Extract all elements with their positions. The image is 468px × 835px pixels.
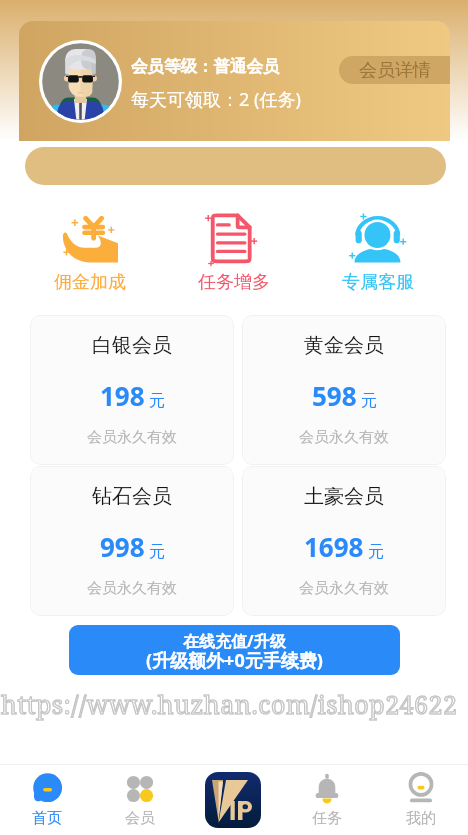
staticText: 每天可领取：2 (任务) bbox=[131, 87, 301, 112]
staticText: 会员永久有效 bbox=[87, 579, 177, 598]
staticText: 首页 bbox=[32, 809, 62, 828]
staticText: 任务 bbox=[312, 809, 342, 828]
button[interactable]: 会员详情 bbox=[339, 56, 450, 84]
staticText: 会员永久有效 bbox=[299, 579, 389, 598]
button[interactable]: 在线充值/升级 bbox=[69, 625, 400, 675]
staticText: 元 bbox=[149, 391, 165, 411]
button[interactable] bbox=[25, 147, 446, 185]
staticText: 998 bbox=[100, 529, 145, 564]
staticText: 会员等级：普通会员 bbox=[131, 56, 280, 77]
staticText: 598 bbox=[312, 378, 357, 413]
button[interactable]: 黄金会员 bbox=[242, 315, 446, 465]
staticText: https://www.huzhan.com/ishop24622 bbox=[1, 687, 458, 721]
button[interactable]: 土豪会员 bbox=[242, 466, 446, 616]
button[interactable]: 专属客服 bbox=[306, 212, 450, 294]
staticText: 198 bbox=[100, 378, 145, 413]
button[interactable]: 钻石会员 bbox=[30, 466, 234, 616]
button[interactable]: 白银会员 bbox=[30, 315, 234, 465]
staticText: 佣金加成 bbox=[54, 271, 126, 294]
staticText: 专属客服 bbox=[342, 271, 414, 294]
staticText: 会员永久有效 bbox=[299, 428, 389, 447]
staticText: 会员 bbox=[125, 809, 155, 828]
staticText: 会员永久有效 bbox=[87, 428, 177, 447]
staticText: 元 bbox=[149, 542, 165, 562]
staticText: 白银会员 bbox=[92, 333, 172, 358]
button[interactable]: 我的 bbox=[374, 765, 468, 835]
staticText: 钻石会员 bbox=[92, 484, 172, 509]
staticText: 元 bbox=[368, 542, 384, 562]
staticText: 土豪会员 bbox=[304, 484, 384, 509]
button[interactable]: 任务增多 bbox=[162, 212, 306, 294]
button[interactable]: 任务 bbox=[280, 765, 374, 835]
button[interactable]: 佣金加成 bbox=[18, 212, 162, 294]
staticText: 任务增多 bbox=[198, 271, 270, 294]
staticText: 会员详情 bbox=[359, 59, 431, 82]
staticText: 元 bbox=[361, 391, 377, 411]
button[interactable]: 首页 bbox=[0, 765, 93, 835]
staticText: 1698 bbox=[304, 529, 364, 564]
staticText: (升级额外+0元手续费) bbox=[146, 648, 323, 673]
staticText: 黄金会员 bbox=[304, 333, 384, 358]
button[interactable]: 会员 bbox=[93, 765, 186, 835]
staticText: 我的 bbox=[406, 809, 436, 828]
staticText: 在线充值/升级 bbox=[183, 630, 286, 652]
button[interactable]: VIP bbox=[186, 765, 280, 835]
